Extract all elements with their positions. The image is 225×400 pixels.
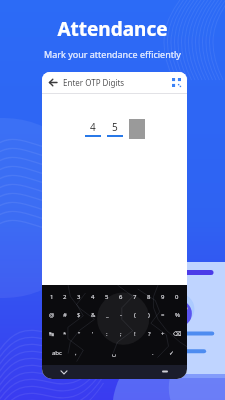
staticText: 5 [105,293,109,301]
button[interactable]: 0 [170,288,184,306]
staticText: " [78,330,81,338]
staticText: ) [148,311,150,319]
staticText: ↹ [49,330,55,337]
button[interactable]: 9 [156,288,170,306]
button[interactable]: ⌫ [170,324,184,343]
staticText: % [175,311,180,319]
staticText: * [63,330,67,338]
staticText: & [91,311,96,319]
button[interactable]: abc [45,343,68,362]
staticText: 4 [91,293,95,301]
staticText: Attendance [57,16,168,42]
button[interactable]: 5 [100,288,114,306]
staticText: + [161,330,165,338]
staticText: 9 [161,293,165,301]
staticText: 4 [90,120,96,134]
button[interactable]: + [156,324,170,343]
staticText: : [106,330,108,338]
staticText: 3 [77,293,81,301]
staticText: . [152,349,154,357]
staticText: 2 [63,293,67,301]
button[interactable]: Back [42,72,63,93]
button[interactable]: Switch keyboard [159,366,171,378]
button[interactable]: ␣ [83,343,145,362]
staticText: ! [134,330,136,338]
button[interactable]: 4 [86,288,100,306]
staticText: # [63,311,67,319]
staticText: ␣ [112,349,116,356]
button[interactable]: ↹ [45,324,58,343]
staticText: 0 [175,293,179,301]
staticText: 5 [112,120,118,134]
button[interactable]: 4 [85,119,101,137]
staticText: Mark your attendance efficiently [44,48,181,60]
button[interactable]: ( [128,306,142,324]
button[interactable]: 2 [58,288,72,306]
staticText: ? [148,330,151,338]
button[interactable]: ' [86,324,100,343]
staticText: Enter OTP Digits [63,77,125,88]
button[interactable]: Scan QR code [166,72,187,93]
button[interactable]: $ [72,306,86,324]
button[interactable]: # [58,306,72,324]
button[interactable]: ) [142,306,156,324]
button[interactable]: 3 [72,288,86,306]
button[interactable]: = [156,306,170,324]
staticText: ⌫ [173,330,182,337]
staticText: ; [120,330,122,338]
staticText: $ [77,311,81,319]
button[interactable]: % [170,306,184,324]
staticText: = [161,311,165,319]
button[interactable]: - [114,306,128,324]
staticText: 1 [50,293,54,301]
button[interactable]: 1 [45,288,58,306]
button[interactable]: ; [114,324,128,343]
button[interactable]: * [58,324,72,343]
staticText: 8 [147,293,151,301]
button[interactable]: " [72,324,86,343]
staticText: , [75,349,77,357]
staticText: abc [52,349,62,357]
staticText: ( [134,311,136,319]
button[interactable]: : [100,324,114,343]
button[interactable]: ! [128,324,142,343]
button[interactable]: 6 [114,288,128,306]
button[interactable]: 5 [107,119,123,137]
staticText: - [120,311,122,319]
button[interactable]: . [145,343,160,362]
staticText: ✓ [169,349,175,356]
button[interactable]: ✓ [160,343,184,362]
button[interactable]: Hide keyboard [58,366,70,378]
staticText: _ [106,311,109,319]
staticText: ' [92,330,94,338]
staticText: 7 [133,293,137,301]
staticText: @ [49,311,55,319]
button[interactable]: 8 [142,288,156,306]
button[interactable]: @ [45,306,58,324]
button[interactable]: _ [100,306,114,324]
button[interactable]: , [68,343,83,362]
button[interactable]: & [86,306,100,324]
button[interactable]: 7 [128,288,142,306]
button[interactable]: ? [142,324,156,343]
staticText: 6 [119,293,123,301]
